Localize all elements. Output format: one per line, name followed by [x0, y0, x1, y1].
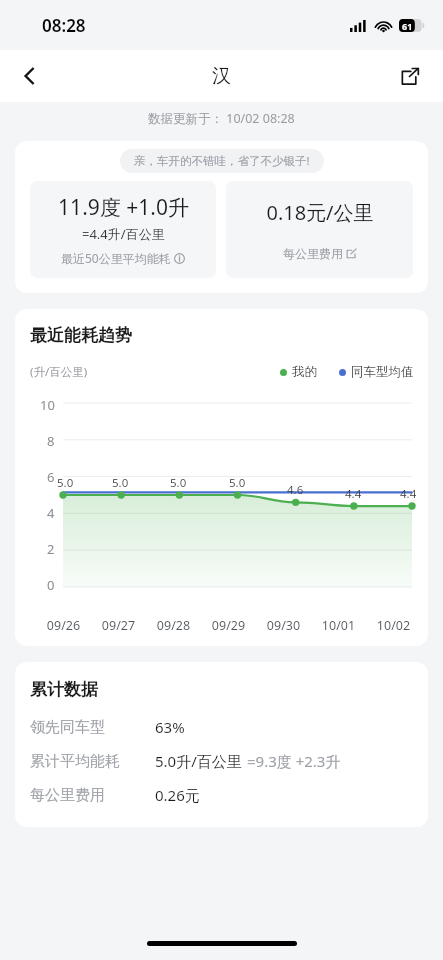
staticText: 累计数据	[30, 679, 98, 700]
staticText: =9.3度 +2.3升	[247, 751, 341, 771]
staticText: 5.0	[57, 475, 74, 491]
staticText: 0.26元	[155, 785, 200, 805]
button[interactable]: 11.9度 +1.0升	[30, 181, 216, 278]
staticText: 6	[47, 468, 55, 486]
staticText: 汉	[212, 64, 231, 88]
staticText: 10/01	[316, 617, 361, 634]
staticText: 09/26	[41, 617, 86, 634]
staticText: 同车型均值	[351, 364, 414, 380]
staticText: 最近50公里平均能耗	[61, 250, 171, 266]
staticText: 领先同车型	[30, 718, 155, 737]
staticText: 最近能耗趋势	[30, 325, 132, 346]
staticText: 2	[47, 540, 55, 558]
staticText: 09/28	[151, 617, 196, 634]
staticText: 我的	[292, 364, 317, 380]
staticText: 5.0	[170, 475, 187, 491]
staticText: 0.18元/公里	[266, 199, 374, 226]
staticText: 63%	[155, 717, 185, 737]
staticText: 4.6	[287, 482, 304, 498]
button[interactable]: 0.18元/公里	[226, 181, 413, 278]
staticText: 累计平均能耗	[30, 752, 155, 771]
staticText: 08:28	[42, 14, 86, 37]
staticText: 61	[402, 20, 413, 32]
staticText: 4.4	[400, 486, 417, 502]
staticText: 4	[47, 504, 55, 522]
button[interactable]: Share	[387, 54, 431, 98]
staticText: 09/30	[261, 617, 306, 634]
staticText: 09/27	[96, 617, 141, 634]
staticText: 10/02	[371, 617, 416, 634]
staticText: 0	[47, 576, 55, 594]
staticText: 5.0升/百公里	[155, 751, 242, 771]
staticText: 每公里费用	[30, 786, 155, 805]
staticText: 5.0	[229, 475, 246, 491]
button[interactable]: Back	[8, 54, 52, 98]
staticText: =4.4升/百公里	[82, 225, 165, 243]
staticText: (升/百公里)	[30, 364, 88, 380]
staticText: 09/29	[206, 617, 251, 634]
staticText: 10	[40, 396, 55, 414]
staticText: 11.9度 +1.0升	[58, 193, 189, 222]
staticText: 数据更新于： 10/02 08:28	[148, 110, 295, 127]
staticText: 每公里费用	[283, 246, 343, 261]
staticText: 5.0	[112, 475, 129, 491]
staticText: 8	[47, 432, 55, 450]
staticText: 亲，车开的不错哇，省了不少银子!	[134, 153, 310, 169]
staticText: 4.4	[345, 486, 362, 502]
